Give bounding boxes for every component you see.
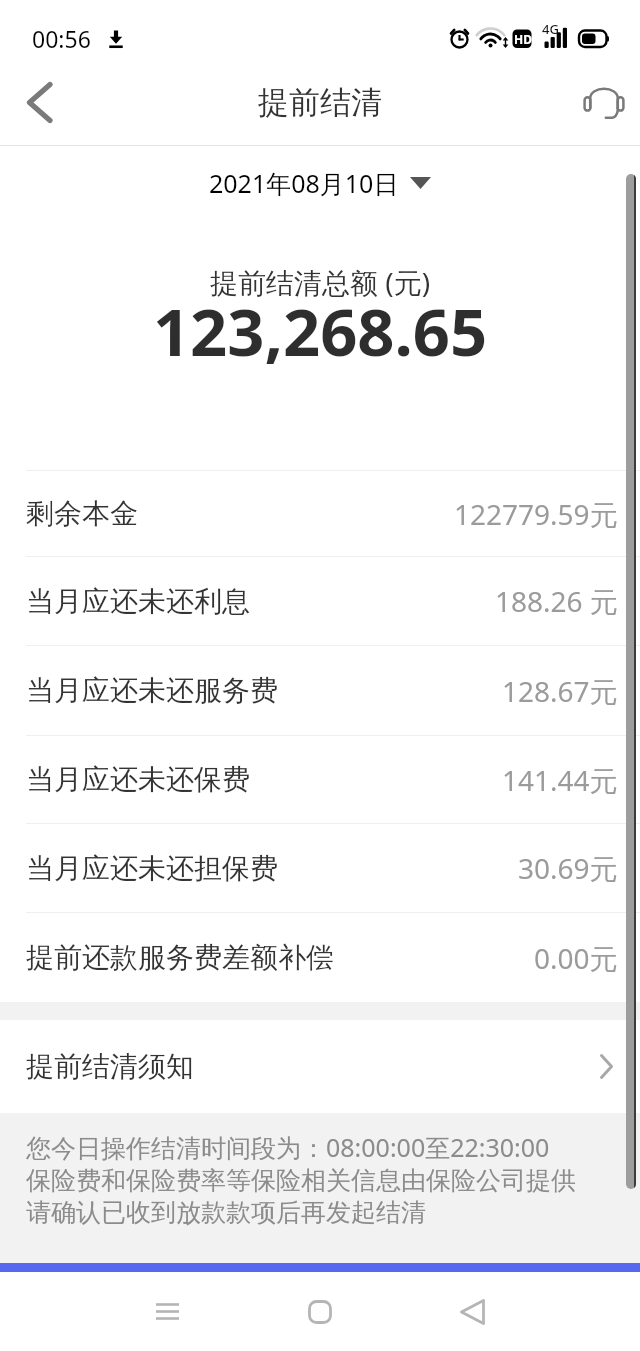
staticText: 提前结清 [258,83,382,122]
staticText: 00:56 [32,23,91,54]
staticText: 提前结清须知 [26,1049,194,1084]
staticText: 128.67元 [502,672,618,710]
staticText: 您今日操作结清时间段为：08:00:00至22:30:00 [26,1130,550,1164]
button[interactable]: 剩余本金 [0,471,640,556]
staticText: 剩余本金 [26,496,138,531]
staticText: 提前还款服务费差额补偿 [26,940,334,975]
staticText: 2021年08月10日 [209,166,399,200]
button[interactable]: 当月应还未还服务费 [0,646,640,735]
staticText: 30.69元 [518,849,618,887]
button[interactable]: 当月应还未还利息 [0,557,640,645]
staticText: 123,268.65 [0,287,640,376]
staticText: HD [514,31,532,47]
staticText: 当月应还未还担保费 [26,851,278,886]
button[interactable]: 提前还款服务费差额补偿 [0,913,640,1002]
staticText: 0.00元 [534,939,618,977]
button[interactable]: Home [280,1272,360,1351]
button[interactable]: Back [432,1272,512,1351]
staticText: 当月应还未还利息 [26,584,250,619]
button[interactable]: Customer service [568,68,640,145]
button[interactable]: 当月应还未还保费 [0,736,640,823]
staticText: 保险费和保险费率等保险相关信息由保险公司提供 [26,1165,576,1196]
button[interactable]: Recent apps [127,1272,207,1351]
button[interactable]: 提前结清须知 [0,1020,640,1113]
staticText: 当月应还未还保费 [26,762,250,797]
staticText: 4G [542,20,559,38]
staticText: 122779.59元 [454,495,618,533]
button[interactable]: Back [8,68,70,145]
staticText: 当月应还未还服务费 [26,673,278,708]
staticText: 141.44元 [502,761,618,799]
staticText: 提前结清总额 (元) [0,263,640,301]
staticText: 188.26 元 [495,582,618,620]
button[interactable]: 当月应还未还担保费 [0,824,640,912]
staticText: 请确认已收到放款款项后再发起结清 [26,1197,426,1228]
button[interactable]: 2021年08月10日 [205,164,435,202]
